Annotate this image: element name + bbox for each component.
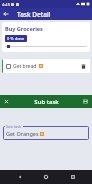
staticText: Buy Groceries <box>5 25 43 32</box>
button[interactable]: Toggle done <box>6 64 11 69</box>
staticText: 0 % done <box>7 36 25 41</box>
button[interactable]: Back <box>13 170 27 184</box>
button[interactable]: Recents <box>66 170 80 184</box>
staticText: Sub task <box>6 124 22 129</box>
button[interactable]: Close <box>0 95 13 108</box>
staticText: Get bread <box>13 63 37 70</box>
staticText: Get Oranges <box>6 130 39 137</box>
button[interactable]: Buy Groceries <box>2 22 90 52</box>
staticText: Sub task <box>34 98 59 106</box>
button[interactable]: Progress slider <box>5 44 87 49</box>
button[interactable]: Home <box>39 170 53 184</box>
staticText: Task Detail <box>17 10 51 19</box>
button[interactable]: Toggle done <box>2 59 90 73</box>
button[interactable]: Save <box>79 95 92 108</box>
button[interactable]: Delete <box>77 60 89 72</box>
button[interactable]: Back <box>0 8 12 20</box>
button[interactable]: Get Oranges <box>3 126 89 140</box>
staticText: 4:45 <box>2 2 10 7</box>
